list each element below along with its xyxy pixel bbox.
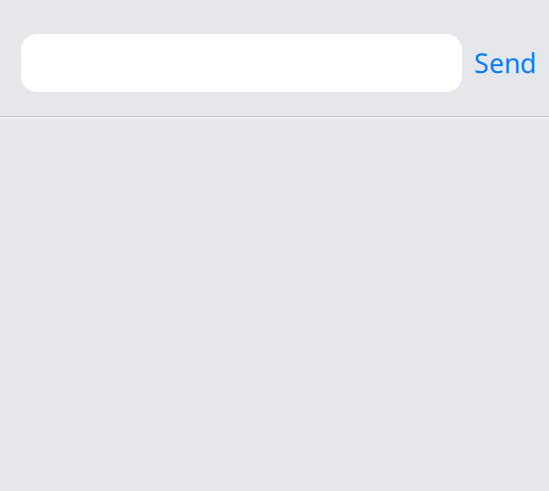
button[interactable]: Send bbox=[474, 34, 535, 92]
staticText: Send bbox=[474, 45, 536, 81]
